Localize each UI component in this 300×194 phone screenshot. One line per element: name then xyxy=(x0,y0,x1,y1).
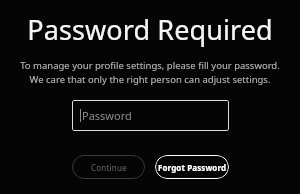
staticText: Password xyxy=(82,108,132,123)
staticText: Continue xyxy=(91,162,127,173)
button[interactable]: Forgot Password xyxy=(155,155,229,179)
button[interactable]: Password xyxy=(72,100,229,131)
button[interactable]: Continue xyxy=(72,155,145,179)
staticText: Password Required xyxy=(0,11,300,48)
staticText: We care that only the right person can a… xyxy=(0,73,300,86)
staticText: To manage your profile settings, please … xyxy=(0,59,300,72)
staticText: Forgot Password xyxy=(158,162,227,173)
